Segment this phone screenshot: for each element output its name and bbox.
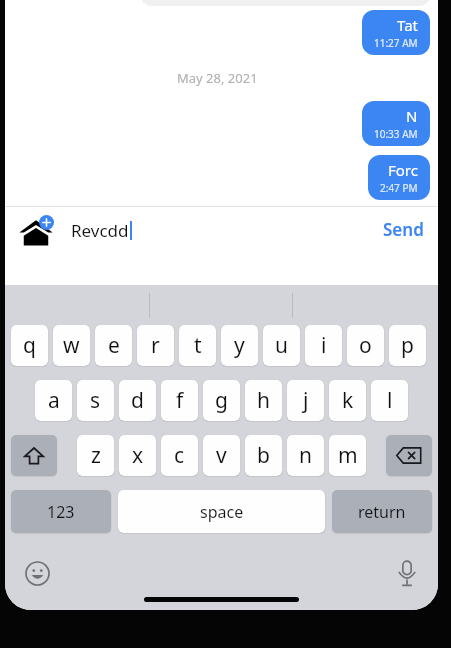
button[interactable]: Backspace	[386, 435, 432, 476]
button[interactable]: n	[287, 435, 324, 476]
button[interactable]: N	[362, 101, 430, 146]
staticText: c	[174, 441, 185, 470]
button[interactable]: l	[371, 380, 408, 421]
staticText: w	[63, 331, 80, 360]
button[interactable]: f	[161, 380, 198, 421]
button[interactable]: d	[119, 380, 156, 421]
button[interactable]: Dictation	[396, 560, 418, 587]
staticText: t	[194, 331, 202, 360]
button[interactable]: Tat	[362, 10, 430, 55]
staticText: l	[387, 386, 393, 415]
staticText: j	[303, 386, 309, 415]
staticText: May 28, 2021	[177, 69, 258, 87]
button[interactable]: k	[329, 380, 366, 421]
staticText: v	[216, 441, 227, 470]
staticText: 123	[47, 501, 75, 523]
button[interactable]: space	[118, 490, 325, 533]
staticText: Send	[383, 218, 424, 241]
staticText: d	[131, 386, 144, 415]
staticText: b	[257, 441, 270, 470]
staticText: y	[234, 331, 245, 360]
button[interactable]: 123	[11, 490, 111, 533]
staticText: o	[359, 331, 372, 360]
button[interactable]: c	[161, 435, 198, 476]
button[interactable]: Forc	[368, 155, 430, 200]
staticText: h	[257, 386, 270, 415]
staticText: Revcdd	[71, 219, 129, 242]
button[interactable]: v	[203, 435, 240, 476]
staticText: e	[108, 331, 120, 360]
button[interactable]: Add attachment	[19, 216, 53, 246]
staticText: z	[91, 441, 101, 470]
button[interactable]: e	[95, 325, 132, 366]
button[interactable]: b	[245, 435, 282, 476]
staticText: p	[401, 331, 414, 360]
button[interactable]: Shift	[11, 435, 57, 476]
button[interactable]: z	[77, 435, 114, 476]
staticText: x	[132, 441, 144, 470]
button[interactable]: w	[53, 325, 90, 366]
button[interactable]: Send	[383, 218, 424, 241]
staticText: return	[358, 501, 406, 523]
staticText: Tat	[397, 15, 418, 35]
staticText: g	[215, 386, 228, 415]
staticText: r	[151, 331, 160, 360]
staticText: 2:47 PM	[380, 181, 418, 195]
button[interactable]: p	[389, 325, 426, 366]
button[interactable]: y	[221, 325, 258, 366]
button[interactable]: Emoji keyboard	[25, 561, 50, 586]
staticText: m	[338, 441, 358, 470]
staticText: s	[90, 386, 101, 415]
staticText: i	[321, 331, 327, 360]
staticText: f	[176, 386, 184, 415]
button[interactable]: a	[35, 380, 72, 421]
button[interactable]: r	[137, 325, 174, 366]
button[interactable]: u	[263, 325, 300, 366]
staticText: n	[299, 441, 312, 470]
button[interactable]: return	[332, 490, 432, 533]
staticText: k	[342, 386, 354, 415]
staticText: a	[48, 386, 60, 415]
button[interactable]: x	[119, 435, 156, 476]
button[interactable]: j	[287, 380, 324, 421]
button[interactable]: m	[329, 435, 366, 476]
button[interactable]: g	[203, 380, 240, 421]
button[interactable]: s	[77, 380, 114, 421]
staticText: N	[406, 106, 418, 126]
button[interactable]: h	[245, 380, 282, 421]
button[interactable]: i	[305, 325, 342, 366]
button[interactable]: q	[11, 325, 48, 366]
staticText: space	[200, 501, 244, 523]
staticText: u	[275, 331, 288, 360]
staticText: 10:33 AM	[374, 127, 418, 141]
button[interactable]: o	[347, 325, 384, 366]
staticText: Forc	[388, 160, 418, 180]
staticText: q	[23, 331, 36, 360]
staticText: 11:27 AM	[374, 36, 418, 50]
button[interactable]: t	[179, 325, 216, 366]
